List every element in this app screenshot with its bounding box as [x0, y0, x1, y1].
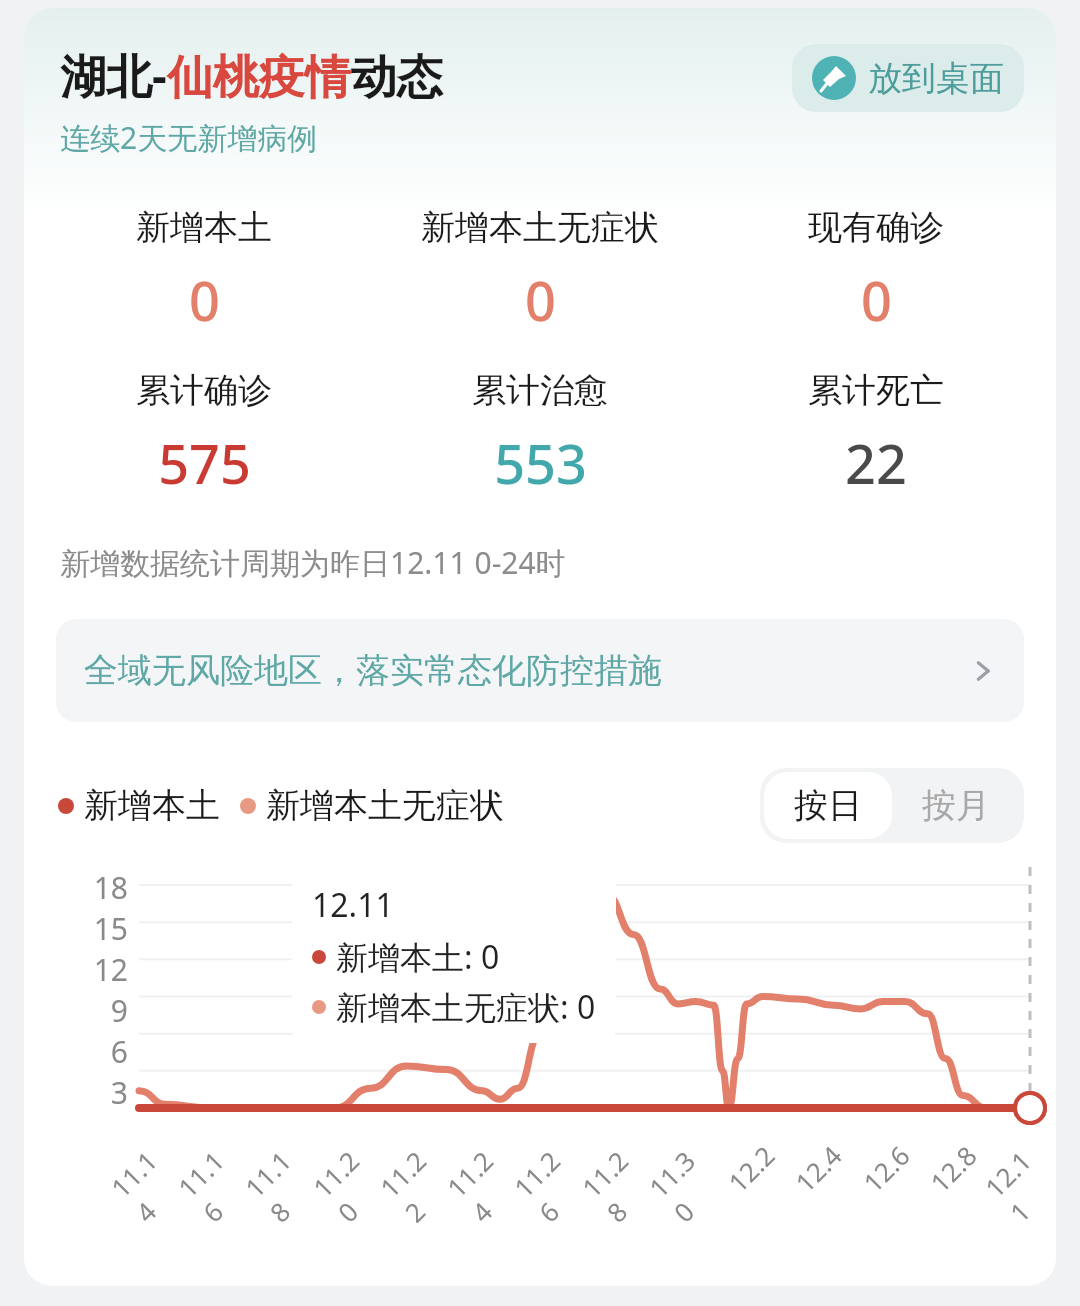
staticText: 11.26	[506, 1143, 592, 1229]
staticText: 12.8	[922, 1138, 984, 1199]
staticText: 3	[110, 1072, 128, 1113]
staticText: 22	[845, 426, 907, 500]
staticText: 累计治愈	[472, 369, 608, 412]
staticText: 0	[189, 263, 220, 337]
staticText: 11.16	[170, 1143, 256, 1229]
staticText: 按日	[794, 784, 862, 827]
staticText: 11.18	[237, 1143, 323, 1229]
staticText: 新增本土无症状: 0	[336, 985, 596, 1029]
button[interactable]: 全域无风险地区，落实常态化防控措施	[56, 619, 1024, 722]
button[interactable]: 放到桌面	[792, 44, 1024, 112]
staticText: 新增本土: 0	[336, 935, 500, 979]
staticText: 0	[525, 263, 556, 337]
staticText: 11.28	[574, 1143, 660, 1229]
staticText: 按月	[922, 784, 990, 827]
staticText: 6	[110, 1031, 128, 1072]
staticText: 11.30	[641, 1143, 727, 1229]
staticText: 12	[93, 949, 128, 990]
staticText: 新增本土无症状	[421, 206, 659, 249]
staticText: 累计死亡	[808, 369, 944, 412]
staticText: 放到桌面	[868, 57, 1004, 100]
staticText: 11.14	[103, 1143, 189, 1229]
staticText: 15	[93, 908, 128, 949]
button[interactable]: 按月	[892, 772, 1020, 839]
staticText: 9	[110, 990, 128, 1031]
staticText: 累计确诊	[136, 369, 272, 412]
staticText: 新增数据统计周期为昨日12.11 0-24时	[60, 542, 566, 583]
staticText: 12.11	[312, 883, 394, 927]
staticText: 11.22	[372, 1143, 458, 1229]
button[interactable]: 按日	[764, 772, 892, 839]
staticText: 11.20	[305, 1143, 391, 1229]
staticText: 12.4	[787, 1138, 849, 1199]
staticText: 12.2	[720, 1138, 782, 1199]
staticText: 现有确诊	[808, 206, 944, 249]
staticText: 12.6	[855, 1138, 917, 1199]
staticText: 连续2天无新增病例	[60, 117, 318, 158]
staticText: 新增本土	[136, 206, 272, 249]
staticText: 553	[494, 426, 587, 500]
staticText: 18	[93, 867, 128, 908]
staticText: 0	[861, 263, 892, 337]
staticText: 全域无风险地区，落实常态化防控措施	[84, 649, 970, 692]
staticText: 12.11	[977, 1143, 1056, 1229]
staticText: 新增本土	[84, 784, 220, 827]
staticText: 新增本土无症状	[266, 784, 504, 827]
staticText: 11.24	[439, 1143, 525, 1229]
staticText: 湖北-仙桃疫情动态	[60, 44, 443, 107]
staticText: 575	[158, 426, 251, 500]
